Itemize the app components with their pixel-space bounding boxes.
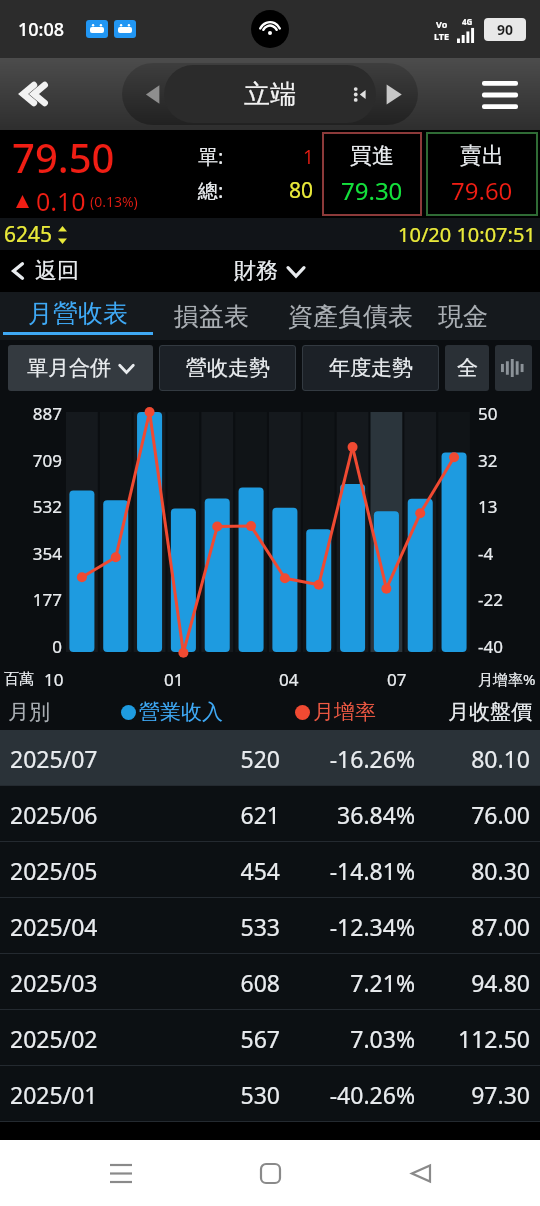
staticText: 月營收表 bbox=[28, 298, 128, 329]
staticText: 資產負債表 bbox=[288, 301, 413, 332]
staticText: 80 bbox=[289, 176, 314, 205]
staticText: 112.50 bbox=[415, 1023, 530, 1054]
staticText: 月增率% bbox=[478, 669, 536, 689]
staticText: LTE bbox=[434, 30, 450, 42]
staticText: 532 bbox=[32, 495, 62, 518]
staticText: 10/20 10:07:51 bbox=[398, 221, 536, 248]
staticText: 損益表 bbox=[174, 301, 249, 332]
staticText: 87.00 bbox=[415, 911, 530, 942]
button[interactable]: Back bbox=[6, 65, 64, 123]
staticText: 36.84% bbox=[280, 799, 415, 830]
staticText: 887 bbox=[32, 402, 62, 425]
button[interactable]: Previous bbox=[132, 73, 174, 115]
staticText: 90 bbox=[497, 20, 514, 39]
button[interactable]: 2025/04 bbox=[0, 898, 540, 954]
staticText: 01 bbox=[164, 668, 184, 691]
staticText: 營收走勢 bbox=[186, 355, 270, 381]
staticText: 2025/05 bbox=[10, 855, 160, 886]
button[interactable]: 2025/06 bbox=[0, 786, 540, 842]
staticText: 1 bbox=[303, 144, 314, 170]
staticText: 2025/02 bbox=[10, 1023, 160, 1054]
button[interactable]: 賣出 bbox=[426, 132, 538, 216]
button[interactable]: 返回 bbox=[8, 257, 79, 285]
button[interactable]: 損益表 bbox=[155, 292, 268, 340]
staticText: 買進 bbox=[350, 142, 394, 170]
staticText: 10:08 bbox=[18, 17, 65, 42]
staticText: 0 bbox=[52, 635, 62, 658]
button[interactable]: Recent apps bbox=[92, 1144, 150, 1202]
button[interactable]: 2025/03 bbox=[0, 954, 540, 1010]
staticText: 10 bbox=[44, 668, 64, 691]
staticText: -16.26% bbox=[280, 743, 415, 774]
staticText: -22 bbox=[478, 588, 503, 611]
staticText: 4G bbox=[462, 16, 473, 27]
staticText: 立端 bbox=[244, 78, 296, 111]
staticText: 97.30 bbox=[415, 1079, 530, 1110]
staticText: 7.03% bbox=[280, 1023, 415, 1054]
staticText: (0.13%) bbox=[90, 192, 138, 211]
button[interactable]: Tab handle bbox=[348, 82, 372, 106]
staticText: 單月合併 bbox=[27, 355, 111, 381]
staticText: -12.34% bbox=[280, 911, 415, 942]
staticText: -14.81% bbox=[280, 855, 415, 886]
button[interactable]: 2025/02 bbox=[0, 1010, 540, 1066]
staticText: 賣出 bbox=[460, 142, 504, 170]
staticText: 177 bbox=[32, 588, 62, 611]
staticText: 總: bbox=[198, 177, 224, 204]
staticText: 返回 bbox=[35, 257, 79, 285]
button[interactable]: 資產負債表 bbox=[268, 292, 433, 340]
staticText: 月增率 bbox=[313, 699, 376, 725]
button[interactable]: 2025/07 bbox=[0, 730, 540, 786]
staticText: 79.50 bbox=[12, 130, 115, 184]
staticText: 709 bbox=[32, 449, 62, 472]
button[interactable]: 年度走勢 bbox=[302, 345, 439, 391]
staticText: 2025/03 bbox=[10, 967, 160, 998]
staticText: 04 bbox=[279, 668, 299, 691]
button[interactable]: 買進 bbox=[322, 132, 422, 216]
button[interactable]: Chart type bbox=[495, 345, 532, 391]
staticText: 0.10 bbox=[36, 184, 86, 218]
staticText: 530 bbox=[160, 1079, 280, 1110]
staticText: -40 bbox=[478, 635, 503, 658]
staticText: 2025/04 bbox=[10, 911, 160, 942]
staticText: 營業收入 bbox=[139, 699, 223, 725]
staticText: 94.80 bbox=[415, 967, 530, 998]
button[interactable]: Back bbox=[391, 1144, 449, 1202]
staticText: 621 bbox=[160, 799, 280, 830]
button[interactable]: 2025/01 bbox=[0, 1066, 540, 1122]
button[interactable]: 單月合併 bbox=[8, 345, 153, 391]
button[interactable]: 2025/05 bbox=[0, 842, 540, 898]
staticText: 13 bbox=[478, 495, 498, 518]
staticText: 80.10 bbox=[415, 743, 530, 774]
staticText: 全 bbox=[457, 355, 478, 381]
staticText: 月收盤價 bbox=[448, 699, 532, 725]
staticText: 79.60 bbox=[451, 174, 513, 207]
staticText: 月別 bbox=[8, 699, 50, 725]
staticText: 520 bbox=[160, 743, 280, 774]
staticText: 現金 bbox=[438, 301, 488, 332]
button[interactable]: 全 bbox=[445, 345, 489, 391]
button[interactable]: 營收走勢 bbox=[159, 345, 296, 391]
button[interactable]: 財務 bbox=[234, 257, 306, 285]
staticText: 32 bbox=[478, 449, 498, 472]
staticText: 年度走勢 bbox=[329, 355, 413, 381]
staticText: 76.00 bbox=[415, 799, 530, 830]
staticText: 2025/06 bbox=[10, 799, 160, 830]
staticText: 07 bbox=[387, 668, 407, 691]
staticText: 50 bbox=[478, 402, 498, 425]
staticText: 567 bbox=[160, 1023, 280, 1054]
button[interactable]: 現金 bbox=[433, 292, 540, 340]
button[interactable]: 月營收表 bbox=[0, 292, 155, 340]
button[interactable]: 立端 bbox=[164, 65, 376, 123]
staticText: 7.21% bbox=[280, 967, 415, 998]
button[interactable]: Next bbox=[372, 73, 414, 115]
staticText: 單: bbox=[198, 143, 224, 170]
staticText: 79.30 bbox=[341, 174, 403, 207]
staticText: -4 bbox=[478, 542, 494, 565]
staticText: Vo bbox=[436, 18, 448, 30]
button[interactable]: Home bbox=[241, 1144, 299, 1202]
staticText: 608 bbox=[160, 967, 280, 998]
staticText: 454 bbox=[160, 855, 280, 886]
button[interactable]: Menu bbox=[472, 66, 528, 122]
staticText: -40.26% bbox=[280, 1079, 415, 1110]
